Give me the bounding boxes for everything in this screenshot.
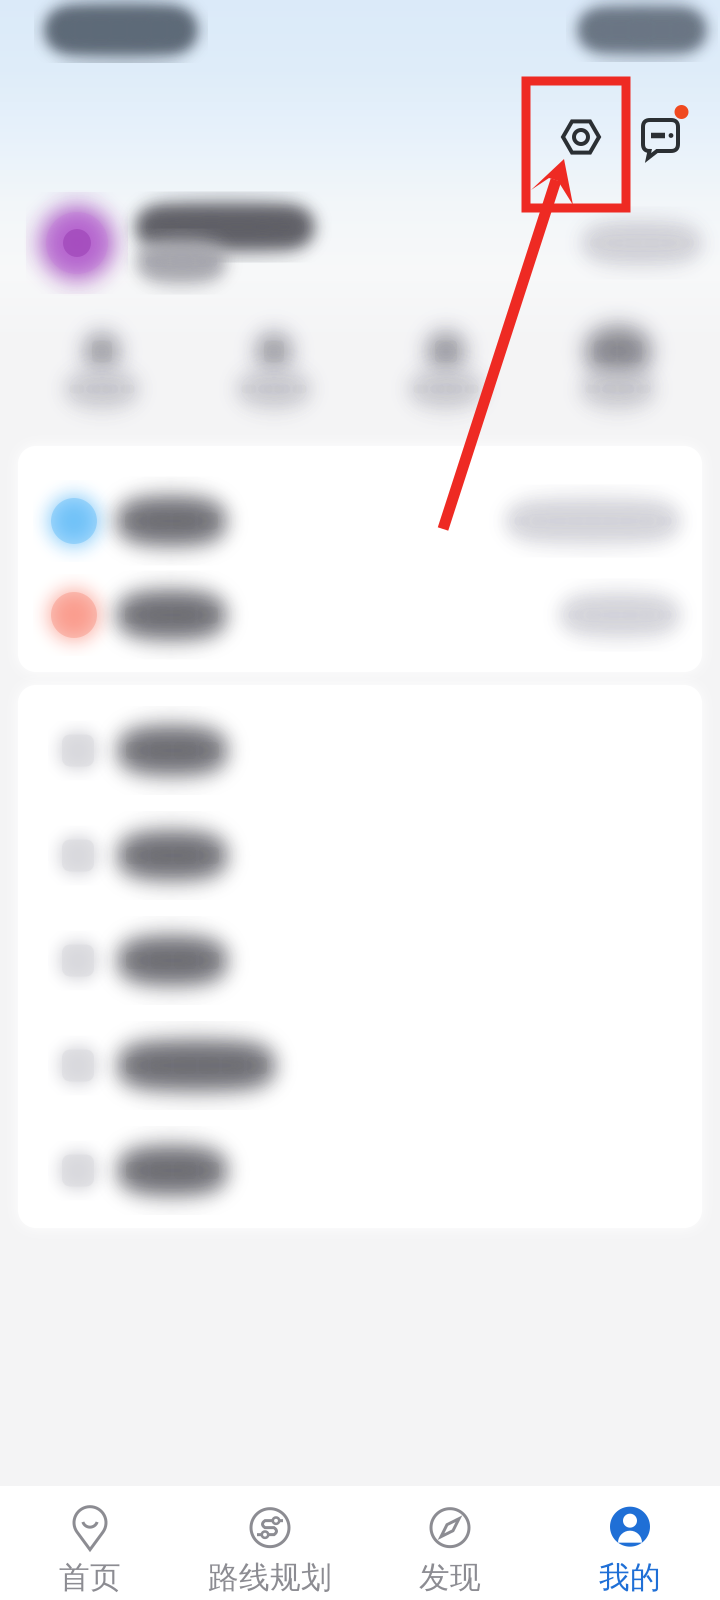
- button[interactable]: [0, 908, 720, 1013]
- button[interactable]: [0, 474, 720, 568]
- button[interactable]: [188, 304, 360, 430]
- staticText: 路线规划: [208, 1559, 332, 1596]
- button[interactable]: Settings: [550, 76, 612, 166]
- button[interactable]: Messages: [630, 76, 694, 166]
- button[interactable]: [16, 304, 188, 430]
- staticText: 我的: [599, 1559, 661, 1596]
- staticText: 发现: [419, 1559, 481, 1596]
- button[interactable]: [360, 304, 532, 430]
- button[interactable]: [0, 698, 720, 803]
- button[interactable]: 路线规划: [180, 1486, 360, 1600]
- staticText: 首页: [59, 1559, 121, 1596]
- button[interactable]: [0, 1013, 720, 1118]
- button[interactable]: 发现: [360, 1486, 540, 1600]
- button[interactable]: [532, 304, 704, 430]
- button[interactable]: 首页: [0, 1486, 180, 1600]
- button[interactable]: [0, 803, 720, 908]
- button[interactable]: 我的: [540, 1486, 720, 1600]
- button[interactable]: [0, 182, 720, 304]
- button[interactable]: [0, 568, 720, 662]
- button[interactable]: [0, 1118, 720, 1223]
